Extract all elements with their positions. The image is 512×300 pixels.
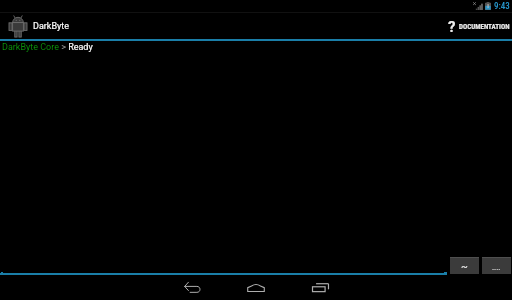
staticText: DOCUMENTATION	[459, 23, 510, 31]
staticText: ....	[492, 263, 501, 272]
button[interactable]: Execute	[450, 257, 479, 274]
button[interactable]: ?	[437, 13, 511, 39]
staticText: DarkByte	[33, 21, 69, 32]
staticText: ~	[461, 261, 468, 273]
button[interactable]: More options	[482, 257, 511, 274]
staticText: ?	[448, 18, 456, 34]
staticText: 9:43	[494, 1, 510, 12]
other: App icon	[9, 15, 27, 38]
button[interactable]: Recent apps	[298, 275, 342, 300]
button[interactable]: Back	[170, 275, 214, 300]
staticText: DarkByte Core > Ready	[2, 42, 93, 53]
button[interactable]: Home	[234, 275, 278, 300]
